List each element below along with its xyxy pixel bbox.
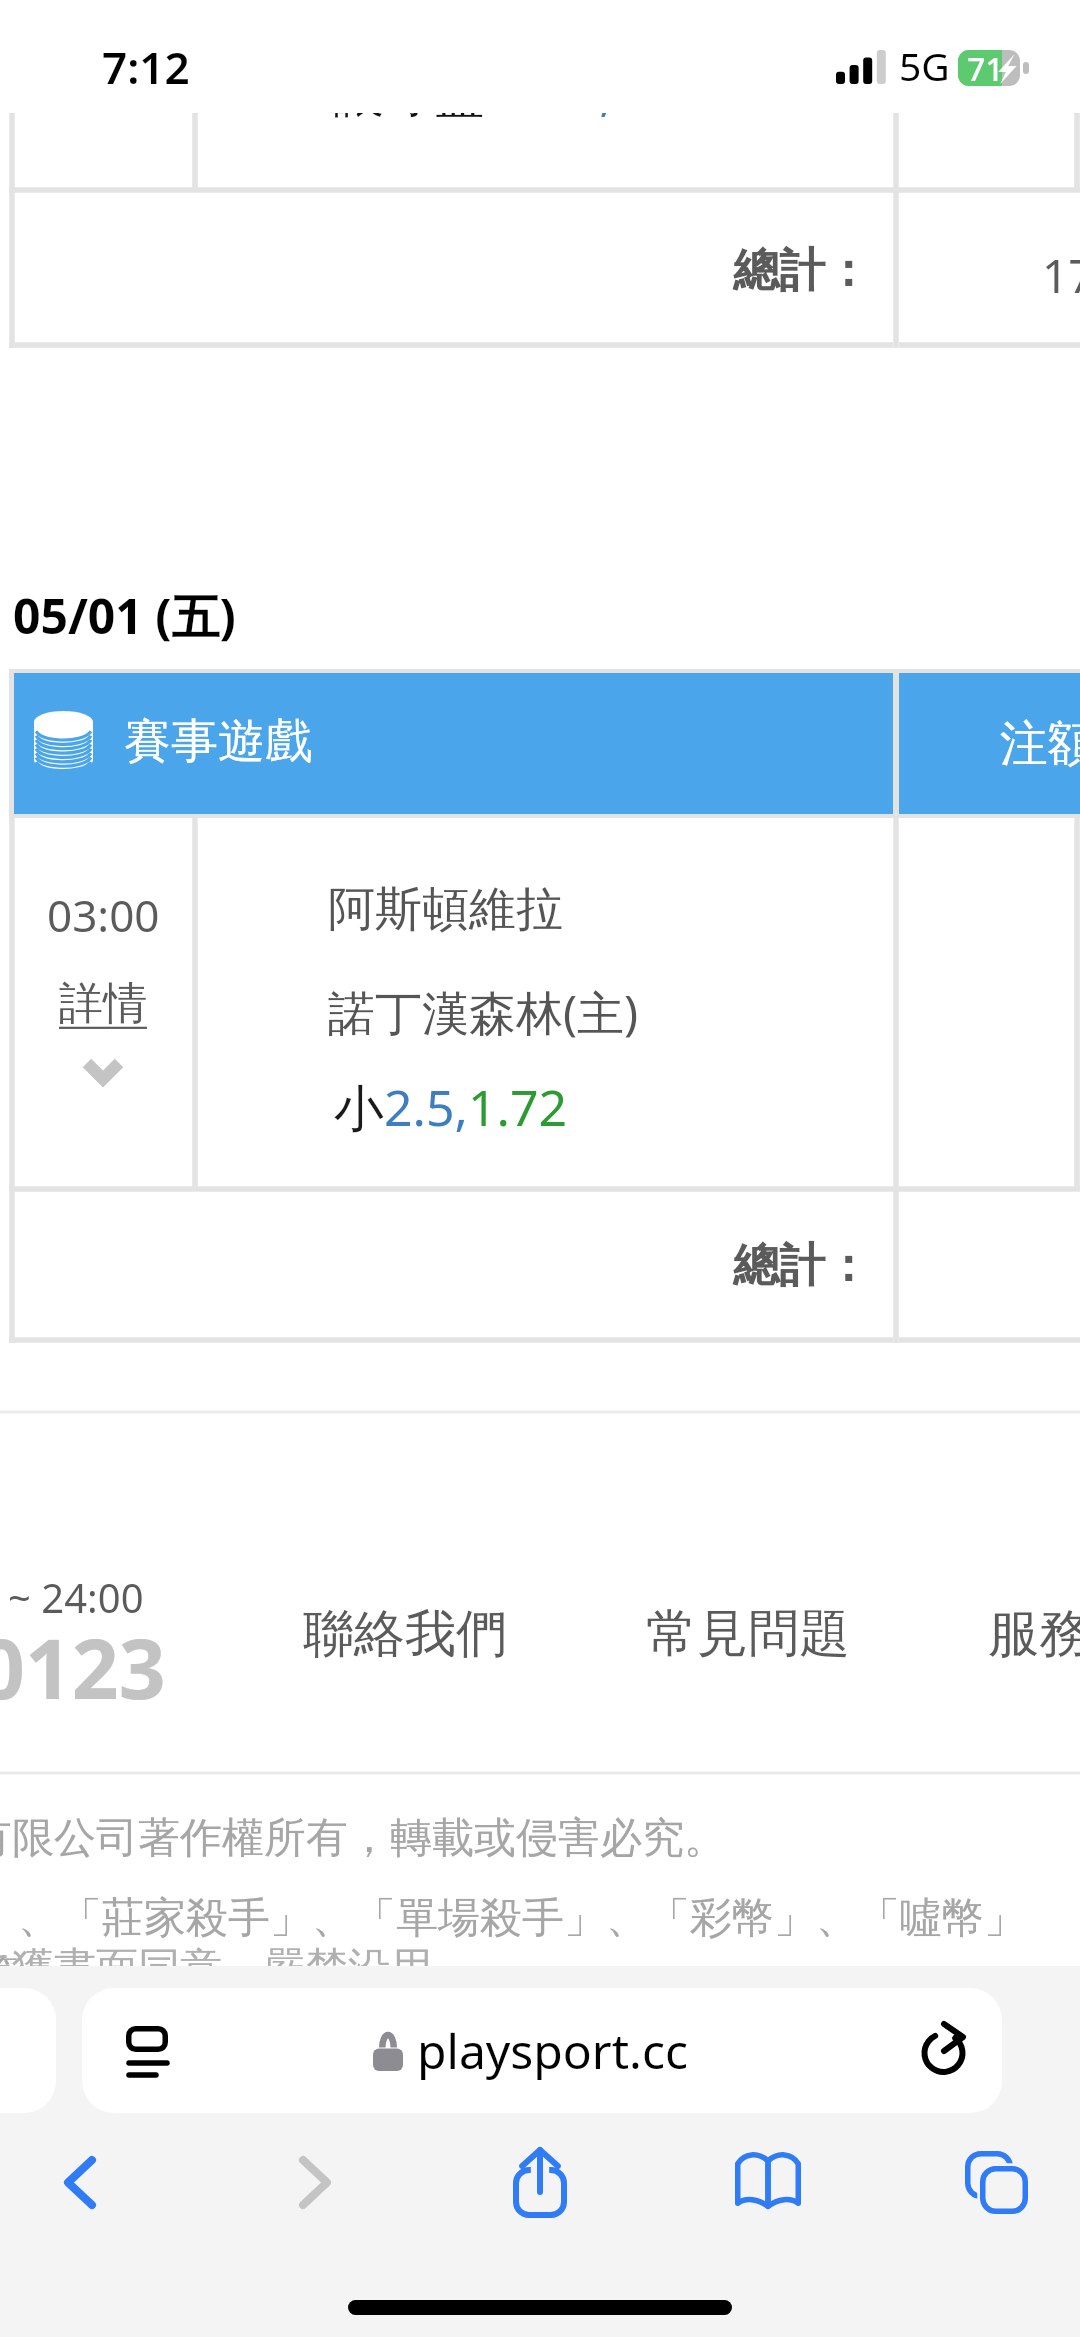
button[interactable]: Tabs	[934, 2127, 1058, 2237]
staticText: 阿斯頓維拉	[328, 880, 563, 939]
staticText: playsport.cc	[417, 2018, 688, 2083]
button[interactable]: Bookmarks	[706, 2125, 830, 2235]
button[interactable]: Share	[478, 2127, 602, 2237]
staticText: 注額	[1000, 714, 1080, 774]
staticText: 」、「莊家殺手」、「單場殺手」、「彩幣」、「噓幣」等	[0, 1892, 1056, 2002]
button[interactable]: Forward	[253, 2127, 377, 2237]
staticText: 7:12	[102, 37, 190, 97]
button[interactable]: Page settings	[82, 1988, 1002, 2113]
staticText: 03:00	[47, 885, 160, 945]
other: Reload	[918, 2018, 974, 2080]
staticText: ~ 24:00	[8, 1570, 144, 1624]
staticText: 71	[967, 47, 1004, 91]
button[interactable]: 常見問題	[646, 1602, 850, 1666]
button[interactable]: 詳情	[59, 976, 147, 1031]
staticText: 0123	[0, 1611, 166, 1723]
staticText: 總計：	[733, 242, 871, 300]
other: Expand details	[81, 1057, 125, 1085]
other: Page settings	[126, 2026, 170, 2080]
staticText: 讓球盤-0.25,1.925	[334, 113, 741, 126]
staticText: 賽事遊戲	[124, 712, 312, 771]
staticText: 5G	[899, 39, 950, 92]
staticText: 05/01 (五)	[13, 583, 236, 649]
staticText: 總計：	[733, 1237, 871, 1295]
staticText: 未獲書面同意，嚴禁沿用。	[0, 1942, 474, 1995]
staticText: 諾丁漢森林(主)	[328, 980, 639, 1044]
staticText: 有限公司著作權所有，轉載或侵害必究。	[0, 1812, 726, 1865]
staticText: 小2.5,1.72	[334, 1073, 568, 1141]
button[interactable]: 服務	[988, 1602, 1080, 1666]
button[interactable]: Back	[18, 2127, 142, 2237]
button[interactable]: 賽事遊戲	[34, 711, 312, 771]
button[interactable]: 聯絡我們	[303, 1602, 507, 1666]
staticText: 17	[1042, 244, 1080, 307]
